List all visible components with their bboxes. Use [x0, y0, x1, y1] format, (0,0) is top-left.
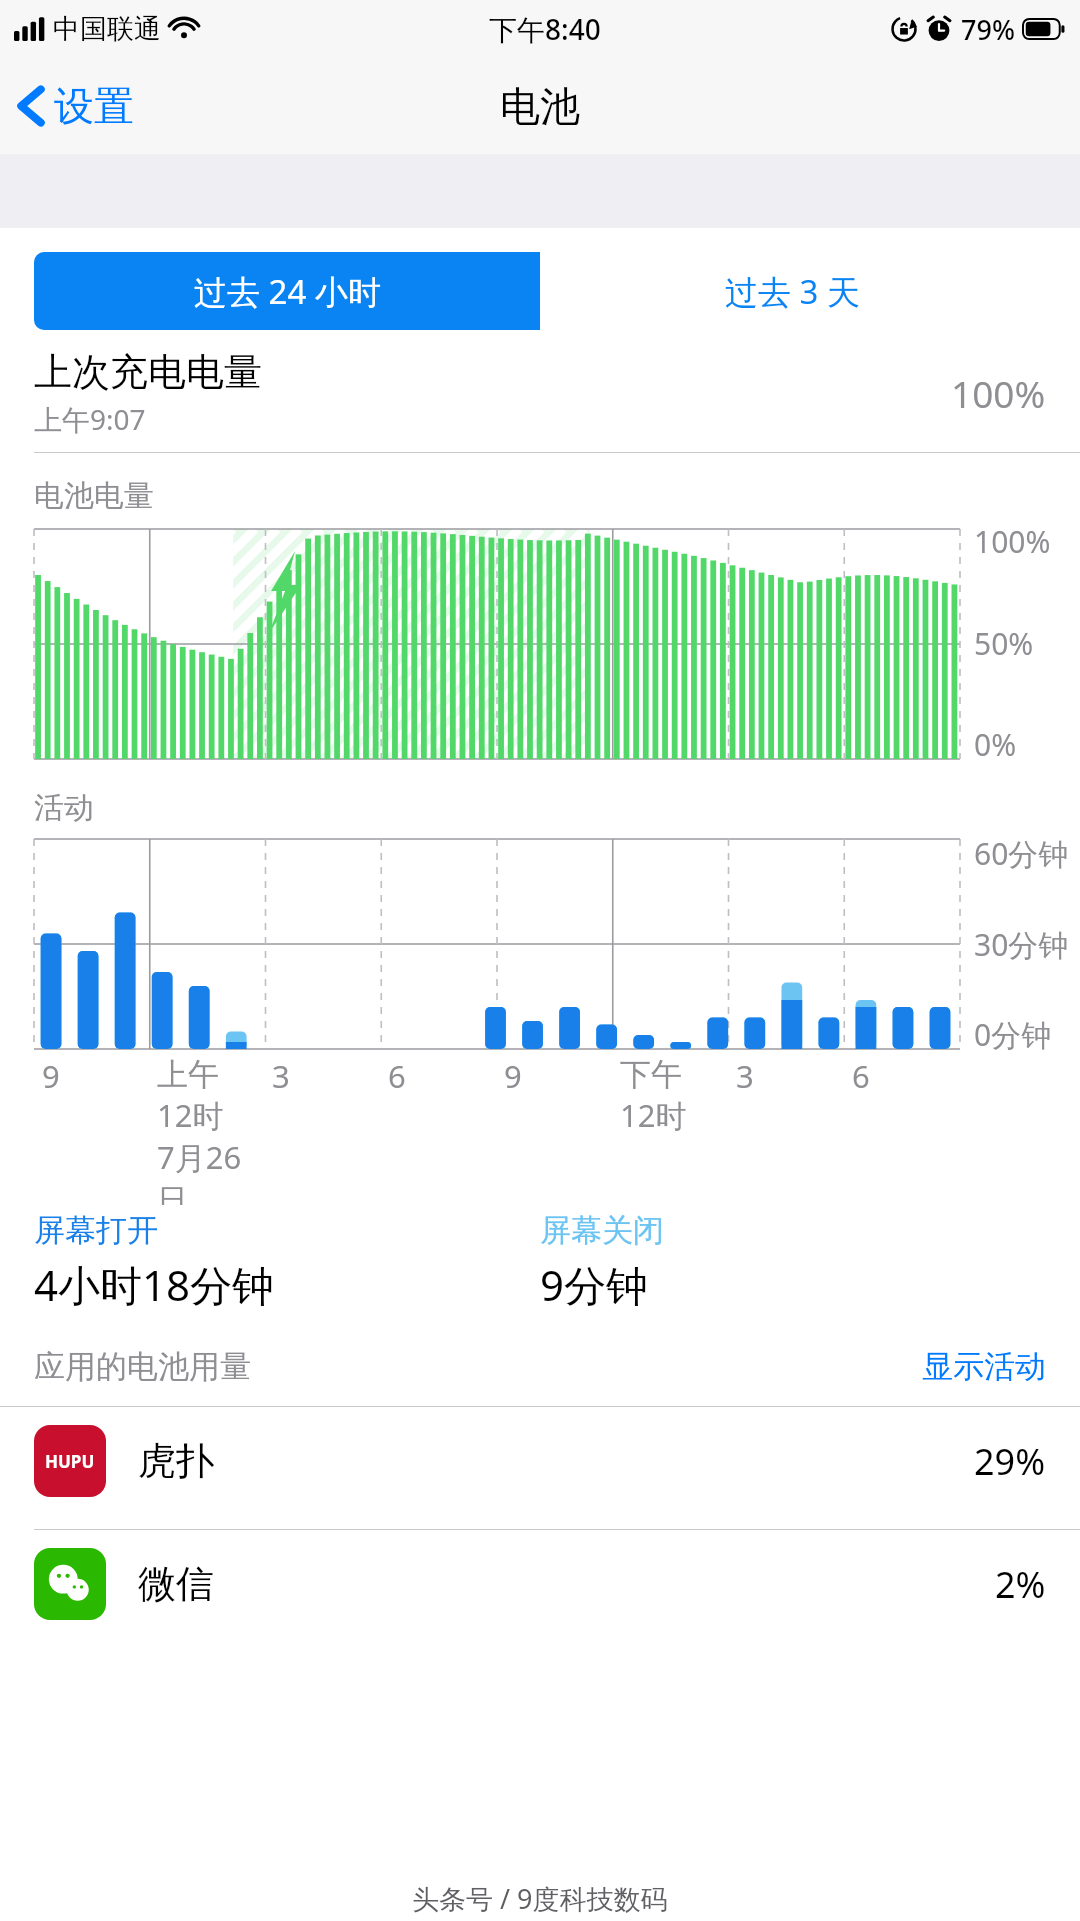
staticText: 0分钟	[974, 1014, 1052, 1055]
staticText: 上午9:07	[34, 400, 146, 438]
button[interactable]: HUPU	[0, 1407, 1080, 1515]
staticText: 活动	[34, 789, 94, 827]
staticText: 3	[272, 1055, 290, 1097]
button[interactable]: 设置	[18, 75, 148, 137]
staticText: 头条号 / 9度科技数码	[412, 1880, 668, 1917]
staticText: 3	[736, 1055, 754, 1097]
staticText: 9	[42, 1055, 60, 1097]
staticText: 12时	[620, 1094, 687, 1136]
staticText: 9分钟	[540, 1256, 649, 1313]
staticText: 显示活动	[922, 1347, 1046, 1386]
staticText: 虎扑	[138, 1437, 974, 1485]
staticText: 2%	[995, 1560, 1046, 1609]
staticText: 过去 24 小时	[194, 269, 381, 314]
staticText: 12时	[157, 1094, 224, 1136]
staticText: 电池	[500, 81, 580, 131]
staticText: 60分钟	[974, 833, 1069, 874]
staticText: 应用的电池用量	[34, 1347, 922, 1386]
staticText: 下午	[620, 1055, 682, 1094]
staticText: 9	[504, 1055, 522, 1097]
staticText: 100%	[974, 521, 1051, 562]
staticText: 50%	[974, 623, 1034, 664]
staticText: 下午8:40	[489, 10, 601, 48]
staticText: 6	[852, 1055, 870, 1097]
staticText: 6	[388, 1055, 406, 1097]
staticText: 7月26日	[157, 1136, 264, 1205]
staticText: 29%	[974, 1437, 1046, 1486]
staticText: 微信	[138, 1560, 995, 1608]
staticText: 上次充电电量	[34, 348, 262, 396]
staticText: 上午	[157, 1055, 219, 1094]
staticText: 屏幕关闭	[540, 1211, 664, 1250]
button[interactable]: 显示活动	[922, 1347, 1046, 1386]
staticText: HUPU	[45, 1450, 95, 1473]
staticText: 电池电量	[34, 477, 154, 515]
staticText: 79%	[961, 11, 1015, 48]
staticText: 中国联通	[53, 12, 161, 46]
staticText: 屏幕打开	[34, 1211, 158, 1250]
button[interactable]: 上次充电电量	[34, 348, 1046, 438]
staticText: 100%	[951, 368, 1046, 418]
button[interactable]: 微信	[0, 1530, 1080, 1638]
staticText: 30分钟	[974, 924, 1069, 965]
staticText: 设置	[54, 81, 134, 131]
button[interactable]: 过去 24 小时	[34, 252, 540, 330]
staticText: 0%	[974, 724, 1017, 765]
staticText: 过去 3 天	[725, 269, 861, 314]
button[interactable]: 过去 3 天	[540, 252, 1046, 330]
staticText: 4小时18分钟	[34, 1256, 275, 1313]
